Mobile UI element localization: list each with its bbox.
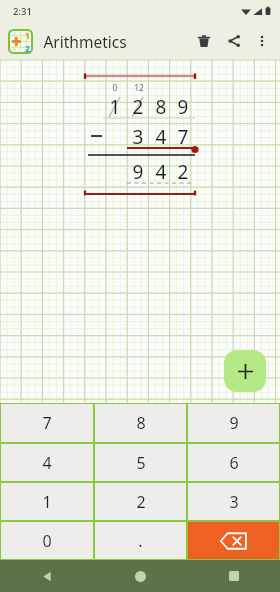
staticText: Arithmetics — [43, 31, 127, 52]
button[interactable]: Share — [219, 26, 249, 56]
button[interactable]: Back — [0, 560, 94, 592]
staticText: 0 — [101, 82, 129, 94]
button[interactable]: Delete — [189, 26, 219, 56]
staticText: 2 — [169, 159, 197, 185]
staticText: 8 — [136, 412, 146, 434]
button[interactable]: 4 — [1, 444, 93, 481]
button[interactable]: Arithmetics app icon — [6, 27, 34, 55]
staticText: 3 — [124, 124, 152, 150]
button[interactable]: 8 — [95, 404, 186, 442]
staticText: 2:31 — [13, 5, 32, 18]
button[interactable]: 7 — [1, 404, 93, 442]
staticText: 2 — [124, 94, 152, 120]
staticText: 4 — [147, 124, 175, 150]
button[interactable]: 9 — [188, 404, 279, 442]
staticText: 3 — [229, 491, 239, 513]
staticText: 4 — [42, 452, 52, 474]
button[interactable]: Home — [94, 560, 187, 592]
button[interactable]: 0 — [1, 522, 93, 559]
staticText: 1 — [101, 94, 129, 120]
button[interactable]: 5 — [95, 444, 186, 481]
button[interactable]: Add — [224, 350, 266, 392]
staticText: 1 — [25, 30, 30, 41]
button[interactable]: 6 — [188, 444, 279, 481]
staticText: 9 — [229, 412, 239, 434]
button[interactable]: 2 — [95, 483, 186, 520]
button[interactable]: Recent apps — [187, 560, 280, 592]
staticText: 9 — [124, 159, 152, 185]
staticText: 12 — [125, 82, 153, 94]
staticText: 0 — [42, 530, 52, 552]
staticText: 1 — [42, 491, 52, 513]
button[interactable]: . — [95, 522, 186, 559]
staticText: . — [138, 530, 143, 552]
button[interactable]: Backspace — [188, 522, 279, 559]
staticText: 5 — [136, 452, 146, 474]
staticText: 2 — [136, 491, 146, 513]
staticText: 7 — [169, 124, 197, 150]
button[interactable]: 3 — [188, 483, 279, 520]
button[interactable]: More options — [249, 28, 275, 54]
staticText: 6 — [229, 452, 239, 474]
staticText: 7 — [42, 412, 52, 434]
staticText: 4 — [147, 159, 175, 185]
staticText: 2 — [25, 43, 30, 54]
button[interactable]: 1 — [1, 483, 93, 520]
staticText: 9 — [169, 94, 197, 120]
staticText: 8 — [147, 94, 175, 120]
